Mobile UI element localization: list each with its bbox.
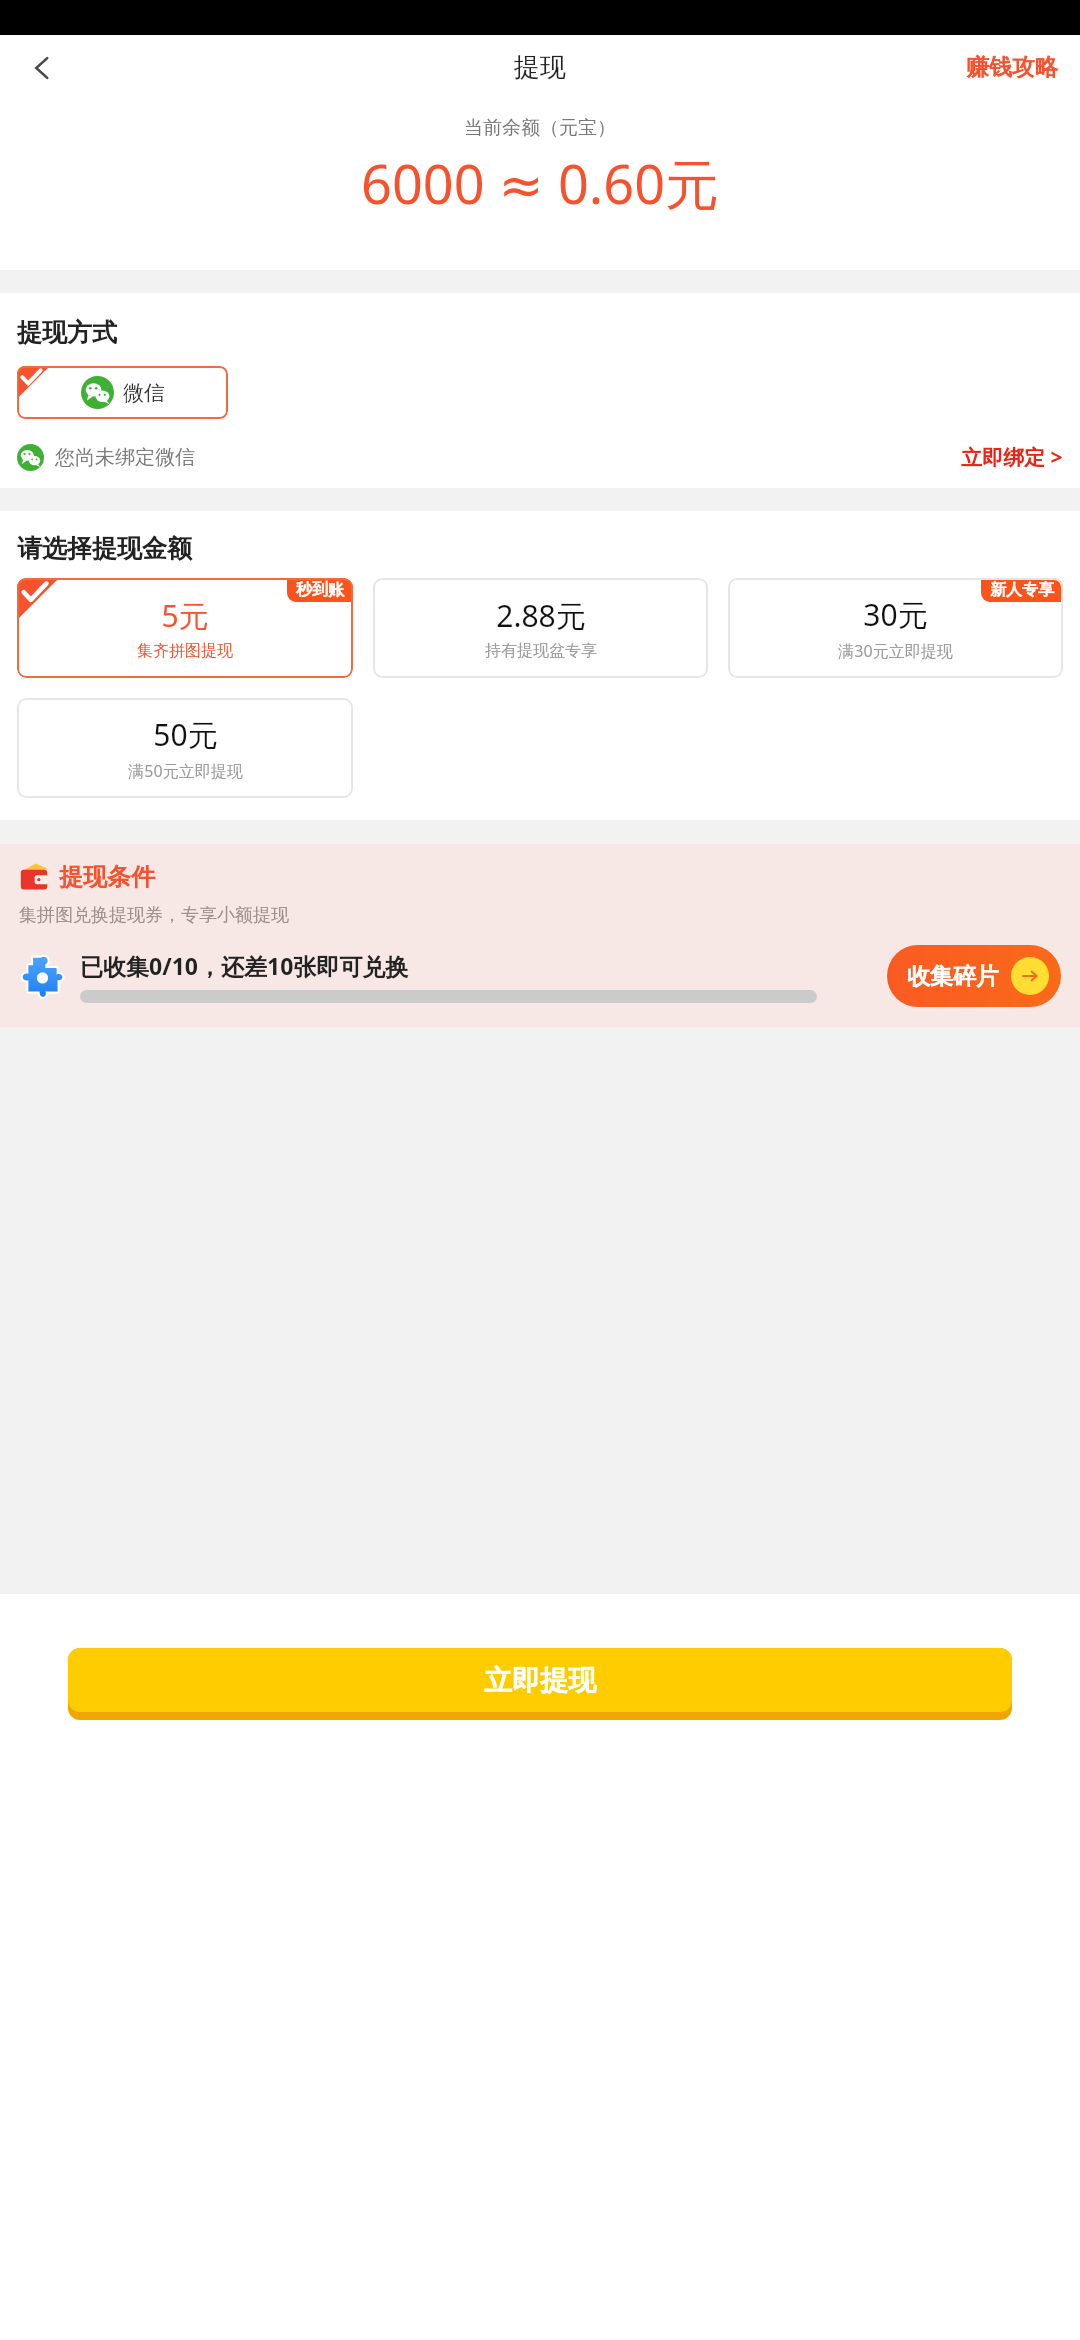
staticText: 集齐拼图提现 [137,641,233,661]
staticText: 提现条件 [59,862,155,892]
staticText: 已收集0/10，还差10张即可兑换 [80,950,409,981]
staticText: 提现方式 [17,317,117,348]
button[interactable]: 2.88元 [373,578,708,678]
staticText: 秒到账 [296,580,344,600]
button[interactable]: 5元 [17,578,353,678]
staticText: 50元 [153,714,218,755]
staticText: 新人专享 [990,580,1054,600]
staticText: 请选择提现金额 [17,533,192,564]
staticText: 微信 [123,380,165,406]
staticText: 收集碎片 [907,962,999,991]
staticText: 5元 [161,595,209,636]
staticText: 2.88元 [496,595,586,636]
staticText: 满50元立即提现 [128,760,243,782]
staticText: 满30元立即提现 [838,640,953,662]
button[interactable]: 收集碎片 [887,945,1061,1007]
button[interactable]: 赚钱攻略 [962,45,1062,90]
staticText: 立即绑定 > [961,443,1063,472]
staticText: 您尚未绑定微信 [55,445,195,470]
staticText: 立即提现 [484,1663,596,1698]
button[interactable]: 您尚未绑定微信 [0,434,1080,480]
button[interactable]: 30元 [728,578,1063,678]
staticText: 赚钱攻略 [966,53,1058,82]
staticText: 当前余额（元宝） [464,116,616,140]
button[interactable]: Back [14,40,70,96]
button[interactable]: 立即提现 [68,1648,1012,1712]
button[interactable]: 微信 [17,366,228,419]
staticText: 6000 ≈ 0.60元 [361,146,720,220]
staticText: 持有提现盆专享 [485,641,597,661]
staticText: 提现 [514,51,566,84]
staticText: 集拼图兑换提现券，专享小额提现 [19,904,289,927]
button[interactable]: 50元 [17,698,353,798]
staticText: 30元 [863,594,928,635]
